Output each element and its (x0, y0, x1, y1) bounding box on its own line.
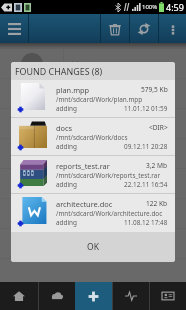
staticText: architecture.doc (56, 199, 113, 209)
staticText: Documents (71, 178, 120, 190)
button[interactable]: Navigation menu (0, 14, 28, 43)
staticText: /mnt/sdcard/Work/reports_test.rar (56, 171, 161, 180)
staticText: Documents (71, 88, 120, 100)
button[interactable]: docs (11, 118, 175, 155)
staticText: FOUND CHANGES (8) (15, 65, 103, 77)
staticText: Documents (71, 148, 120, 160)
staticText: docs (56, 123, 73, 133)
button[interactable]: OK (11, 232, 175, 262)
staticText: /mnt/sdcard/Work/architecture.doc (56, 209, 163, 218)
staticText: plan.mpp (56, 85, 90, 95)
staticText: /mnt/sdcard/Work/plan.mpp (56, 95, 143, 104)
staticText: Documents (71, 118, 120, 130)
staticText: /mnt/sdcard/Work/docs (56, 133, 128, 142)
button[interactable]: Add (75, 282, 112, 310)
staticText: <DIR> (149, 123, 168, 132)
staticText: Documents (71, 208, 120, 220)
staticText: reports_test.rar (56, 161, 110, 171)
button[interactable]: Refresh (130, 14, 158, 43)
button[interactable]: Cloud (38, 282, 75, 310)
staticText: adding (56, 142, 77, 151)
button[interactable]: Contacts (149, 282, 186, 310)
button[interactable]: Activity (112, 282, 149, 310)
button[interactable]: architecture.doc (11, 194, 175, 231)
staticText: 4:59 (166, 1, 184, 13)
staticText: My data (71, 58, 105, 70)
staticText: Documents (71, 238, 120, 250)
staticText: 22.12.11 16:54 (124, 180, 168, 189)
staticText: adding (56, 180, 77, 189)
staticText: 11.01.12 01:59 (124, 104, 168, 113)
staticText: 09.12.11 20:28 (124, 142, 168, 151)
staticText: 122 Kb (146, 199, 168, 208)
button[interactable]: More options (159, 14, 186, 43)
staticText: 11.08.12 17:48 (124, 218, 168, 227)
button[interactable]: reports_test.rar (11, 156, 175, 193)
staticText: 100% (142, 3, 158, 11)
button[interactable]: plan.mpp (11, 80, 175, 117)
staticText: 3,2 Mb (146, 161, 168, 170)
staticText: 579,5 Kb (141, 85, 168, 94)
staticText: adding (56, 104, 77, 113)
button[interactable]: Delete (101, 14, 129, 43)
button[interactable]: Home (0, 282, 38, 310)
staticText: OK (87, 241, 99, 253)
staticText: adding (56, 218, 77, 227)
